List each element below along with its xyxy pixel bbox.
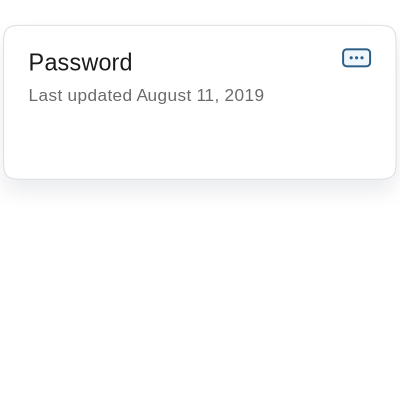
staticText: Password <box>29 49 133 75</box>
staticText: Last updated August 11, 2019 <box>29 85 265 105</box>
button[interactable]: More options <box>343 49 370 66</box>
